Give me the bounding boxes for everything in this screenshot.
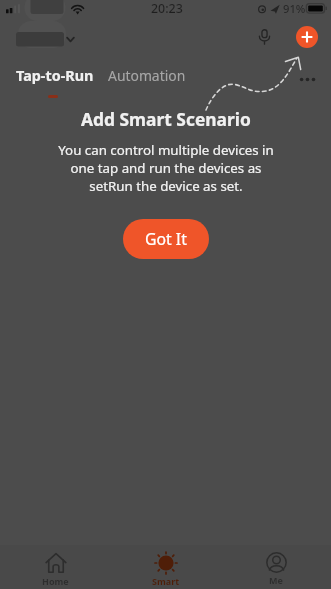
button[interactable]: Voice search: [254, 26, 275, 47]
staticText: Automation: [108, 66, 186, 85]
staticText: You can control multiple devices in one …: [58, 141, 274, 195]
staticText: 91%: [283, 1, 306, 16]
staticText: Tap-to-Run: [16, 66, 94, 86]
staticText: 20:23: [151, 0, 183, 17]
button[interactable]: Select home: [12, 26, 78, 50]
staticText: Add Smart Scenario: [81, 107, 251, 131]
staticText: Smart: [152, 575, 180, 587]
staticText: Me: [269, 574, 283, 586]
button[interactable]: Me: [221, 545, 331, 589]
button[interactable]: Automation: [108, 66, 186, 85]
staticText: Home: [42, 575, 69, 587]
button[interactable]: Tap-to-Run: [16, 66, 94, 98]
button[interactable]: Add scenario: [296, 26, 318, 48]
button[interactable]: Smart: [111, 545, 221, 589]
staticText: Got It: [145, 228, 187, 250]
button[interactable]: Got It: [123, 219, 209, 259]
button[interactable]: Home: [0, 545, 111, 589]
button[interactable]: More options: [296, 68, 319, 91]
